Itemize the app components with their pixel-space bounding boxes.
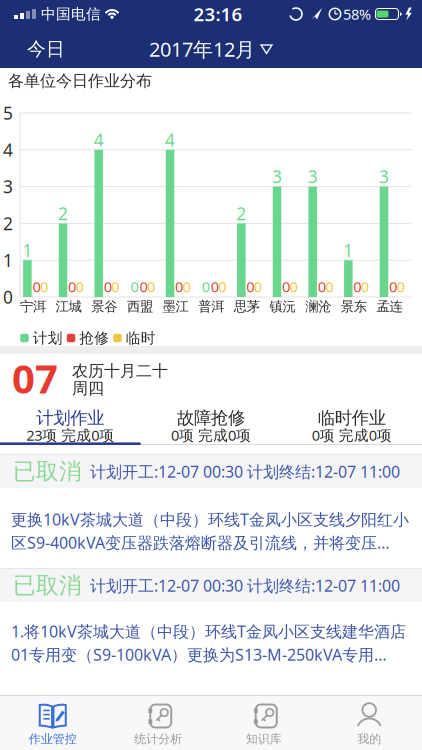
staticText: 0	[104, 277, 112, 296]
staticText: 58%	[343, 4, 371, 24]
staticText: 2	[236, 202, 246, 225]
staticText: 0	[389, 277, 397, 296]
staticText: 0	[3, 285, 13, 308]
staticText: 3	[272, 165, 282, 188]
staticText: 0	[318, 277, 326, 296]
staticText: 0	[68, 277, 76, 296]
staticText: 思茅	[234, 298, 260, 315]
staticText: 0项 完成0项	[312, 425, 392, 445]
staticText: 0	[202, 277, 210, 296]
staticText: 镇沅	[269, 298, 295, 315]
staticText: 0	[289, 277, 297, 296]
staticText: 5	[3, 101, 13, 124]
staticText: 4	[165, 128, 175, 151]
staticText: 西盟	[127, 298, 153, 315]
staticText: 计划	[33, 329, 63, 347]
staticText: 2	[3, 212, 13, 235]
staticText: 23:16	[193, 2, 242, 26]
button[interactable]: 临时作业	[281, 397, 422, 445]
staticText: 抢修	[79, 329, 109, 347]
staticText: 中国电信	[41, 5, 101, 23]
staticText: 2017年12月	[149, 36, 255, 62]
staticText: 计划开工:12-07 00:30 计划终结:12-07 11:00	[90, 461, 400, 482]
staticText: 1	[22, 239, 32, 262]
staticText: 3	[308, 165, 318, 188]
staticText: 澜沧	[305, 298, 331, 315]
staticText: 0	[76, 277, 84, 296]
button[interactable]: 我的	[316, 695, 422, 750]
staticText: 0	[147, 277, 155, 296]
staticText: 景谷	[91, 298, 117, 315]
staticText: 07	[12, 351, 58, 404]
staticText: 0	[396, 277, 404, 296]
staticText: 0	[175, 277, 183, 296]
staticText: 计划开工:12-07 00:30 计划终结:12-07 11:00	[90, 575, 400, 596]
staticText: 0	[218, 277, 226, 296]
staticText: 江城	[56, 298, 82, 315]
staticText: 周四	[72, 379, 104, 398]
staticText: 统计分析	[134, 732, 182, 746]
staticText: 0	[40, 277, 48, 296]
staticText: 已取消	[13, 458, 82, 485]
staticText: 墨江	[162, 298, 188, 315]
staticText: 4	[3, 138, 13, 161]
staticText: 0项 完成0项	[171, 425, 251, 445]
staticText: 我的	[357, 732, 381, 746]
staticText: 0	[111, 277, 119, 296]
staticText: 作业管控	[29, 732, 77, 746]
staticText: 0	[254, 277, 262, 296]
staticText: 0	[211, 277, 219, 296]
staticText: 0	[32, 277, 40, 296]
button[interactable]: 今日	[14, 30, 78, 68]
button[interactable]: 知识库	[211, 695, 316, 750]
button[interactable]: 更换10kV茶城大道（中段）环线T金凤小区支线夕阳红小	[0, 488, 422, 568]
staticText: 普洱	[198, 298, 224, 315]
staticText: 0	[353, 277, 361, 296]
button[interactable]: 作业管控	[0, 695, 105, 750]
staticText: 4	[94, 128, 104, 151]
button[interactable]: 计划作业	[0, 397, 141, 445]
staticText: 临时作业	[318, 407, 386, 429]
staticText: 3	[3, 175, 13, 198]
staticText: 计划作业	[36, 407, 104, 429]
staticText: 3	[379, 165, 389, 188]
button[interactable]: 故障抢修	[141, 397, 281, 445]
staticText: 1	[3, 249, 13, 272]
staticText: 1.将10kV茶城大道（中段）环线T金凤小区支线建华酒店	[11, 621, 406, 642]
staticText: 23项 完成0项	[26, 425, 114, 445]
staticText: 今日	[27, 37, 65, 60]
staticText: 2	[58, 202, 68, 225]
staticText: 0	[282, 277, 290, 296]
staticText: 区S9-400kVA变压器跌落熔断器及引流线，并将变压…	[11, 532, 390, 553]
staticText: 1	[343, 239, 353, 262]
staticText: 故障抢修	[177, 407, 245, 429]
staticText: 临时	[126, 329, 156, 347]
button[interactable]: 1.将10kV茶城大道（中段）环线T金凤小区支线建华酒店	[0, 602, 422, 695]
staticText: 0	[325, 277, 333, 296]
staticText: 0	[361, 277, 369, 296]
staticText: 更换10kV茶城大道（中段）环线T金凤小区支线夕阳红小	[11, 509, 409, 530]
button[interactable]: 2017年12月	[149, 36, 273, 62]
staticText: 0	[182, 277, 190, 296]
button[interactable]: 已取消	[0, 568, 422, 602]
staticText: 0	[130, 277, 138, 296]
staticText: 各单位今日作业分布	[8, 71, 152, 91]
staticText: 景东	[341, 298, 367, 315]
staticText: 孟连	[376, 298, 402, 315]
staticText: 01专用变（S9-100kVA）更换为S13-M-250kVA专用…	[11, 644, 387, 665]
staticText: 0	[139, 277, 147, 296]
staticText: 农历十月二十	[72, 361, 168, 381]
staticText: 宁洱	[20, 298, 46, 315]
button[interactable]: 统计分析	[105, 695, 211, 750]
staticText: 已取消	[13, 572, 82, 599]
button[interactable]: 已取消	[0, 454, 422, 488]
staticText: 知识库	[246, 732, 282, 746]
staticText: 0	[246, 277, 254, 296]
